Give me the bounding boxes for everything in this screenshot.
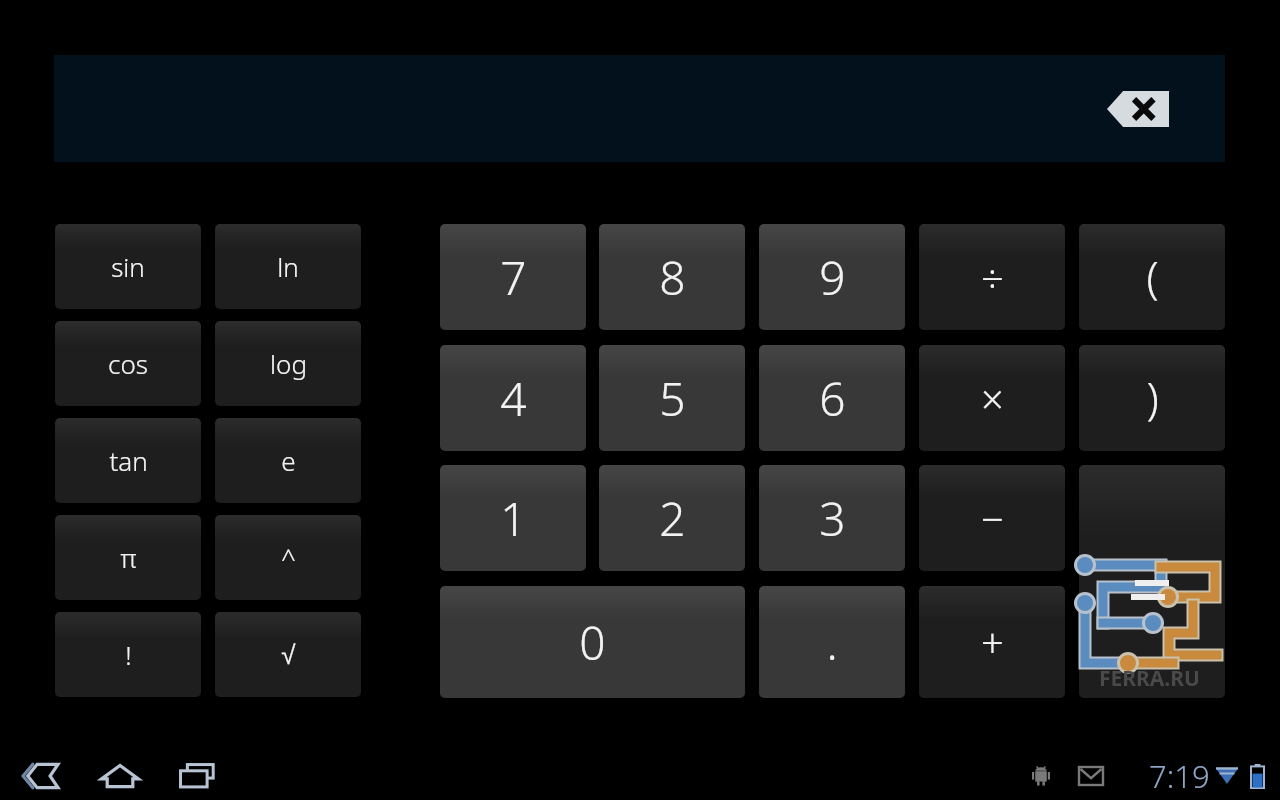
staticText: ! — [125, 637, 132, 672]
staticText: 5 — [659, 367, 686, 430]
staticText: 4 — [500, 367, 527, 430]
staticText: e — [281, 443, 296, 478]
staticText: FERRA.RU — [1099, 664, 1200, 693]
staticText: π — [120, 540, 137, 575]
button[interactable]: ^ — [215, 515, 361, 600]
button[interactable]: 2 — [599, 465, 745, 571]
button[interactable]: − — [919, 465, 1065, 571]
staticText: tan — [109, 443, 148, 478]
button[interactable]: √ — [215, 612, 361, 697]
staticText: 3 — [819, 487, 846, 550]
button[interactable]: ) — [1079, 345, 1225, 451]
button[interactable]: ! — [55, 612, 201, 697]
staticText: ln — [277, 249, 299, 284]
button[interactable]: ÷ — [919, 224, 1065, 330]
staticText: ÷ — [981, 250, 1004, 304]
button[interactable]: π — [55, 515, 201, 600]
staticText: + — [981, 615, 1004, 669]
button[interactable]: ( — [1079, 224, 1225, 330]
button[interactable]: 9 — [759, 224, 905, 330]
staticText: 2 — [659, 487, 686, 550]
staticText: cos — [108, 346, 148, 381]
staticText: × — [981, 371, 1004, 425]
staticText: 8 — [659, 246, 686, 309]
button[interactable]: 4 — [440, 345, 586, 451]
button[interactable]: 5 — [599, 345, 745, 451]
staticText: 0 — [579, 611, 606, 674]
button[interactable]: USB debugging — [1024, 759, 1058, 793]
button[interactable]: Delete — [54, 55, 1225, 162]
button[interactable]: log — [215, 321, 361, 406]
button[interactable]: sin — [55, 224, 201, 309]
button[interactable]: tan — [55, 418, 201, 503]
button[interactable]: × — [919, 345, 1065, 451]
button[interactable]: 8 — [599, 224, 745, 330]
button[interactable]: Equals — [1079, 465, 1225, 698]
staticText: 7 — [500, 246, 527, 309]
button[interactable]: ln — [215, 224, 361, 309]
staticText: 6 — [819, 367, 846, 430]
button[interactable]: 7 — [440, 224, 586, 330]
staticText: sin — [111, 249, 145, 284]
staticText: 9 — [819, 246, 846, 309]
button[interactable]: e — [215, 418, 361, 503]
staticText: ) — [1146, 368, 1159, 428]
button[interactable]: Back — [12, 752, 68, 800]
button[interactable]: + — [919, 586, 1065, 698]
button[interactable]: . — [759, 586, 905, 698]
button[interactable]: Home — [92, 752, 148, 800]
button[interactable]: cos — [55, 321, 201, 406]
staticText: √ — [281, 640, 296, 669]
staticText: . — [826, 611, 838, 674]
button[interactable]: New mail — [1074, 759, 1108, 793]
staticText: 1 — [500, 487, 527, 550]
button[interactable]: Delete — [1103, 87, 1173, 131]
button[interactable]: 0 — [440, 586, 745, 698]
staticText: ( — [1146, 247, 1159, 307]
staticText: 7:19 — [1149, 755, 1210, 797]
button[interactable]: 1 — [440, 465, 586, 571]
button[interactable]: Recent apps — [170, 752, 226, 800]
staticText: − — [981, 491, 1004, 545]
button[interactable]: 6 — [759, 345, 905, 451]
button[interactable]: 3 — [759, 465, 905, 571]
staticText: ^ — [281, 540, 296, 575]
staticText: log — [270, 346, 307, 381]
